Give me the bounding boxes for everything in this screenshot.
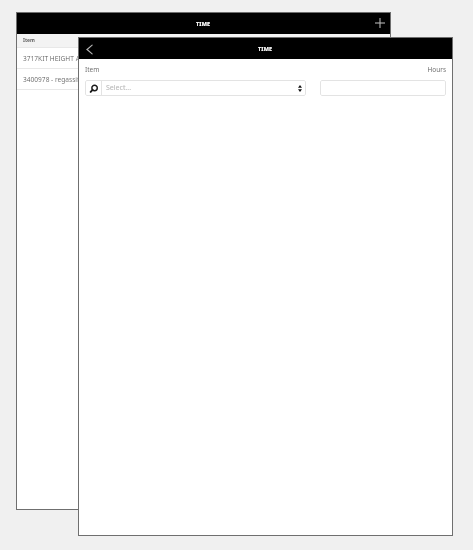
staticText: 3400978 - regassification of unit [23,75,122,84]
button[interactable]: Select... [85,80,306,96]
staticText: Item [85,65,100,74]
button[interactable]: 3400978 - regassification of unit [16,69,391,90]
button[interactable] [320,80,446,96]
staticText: 3717KIT HEIGHT ADJUSTMENT KIT [23,54,129,63]
staticText: TIME [258,45,273,52]
button[interactable]: Back [80,39,98,57]
button[interactable]: 3717KIT HEIGHT ADJUSTMENT KIT [16,48,391,69]
staticText: Select... [106,83,293,93]
button[interactable]: Add [371,14,389,32]
staticText: TIME [196,20,211,27]
staticText: Hours [427,65,446,74]
staticText: Item [23,37,35,44]
